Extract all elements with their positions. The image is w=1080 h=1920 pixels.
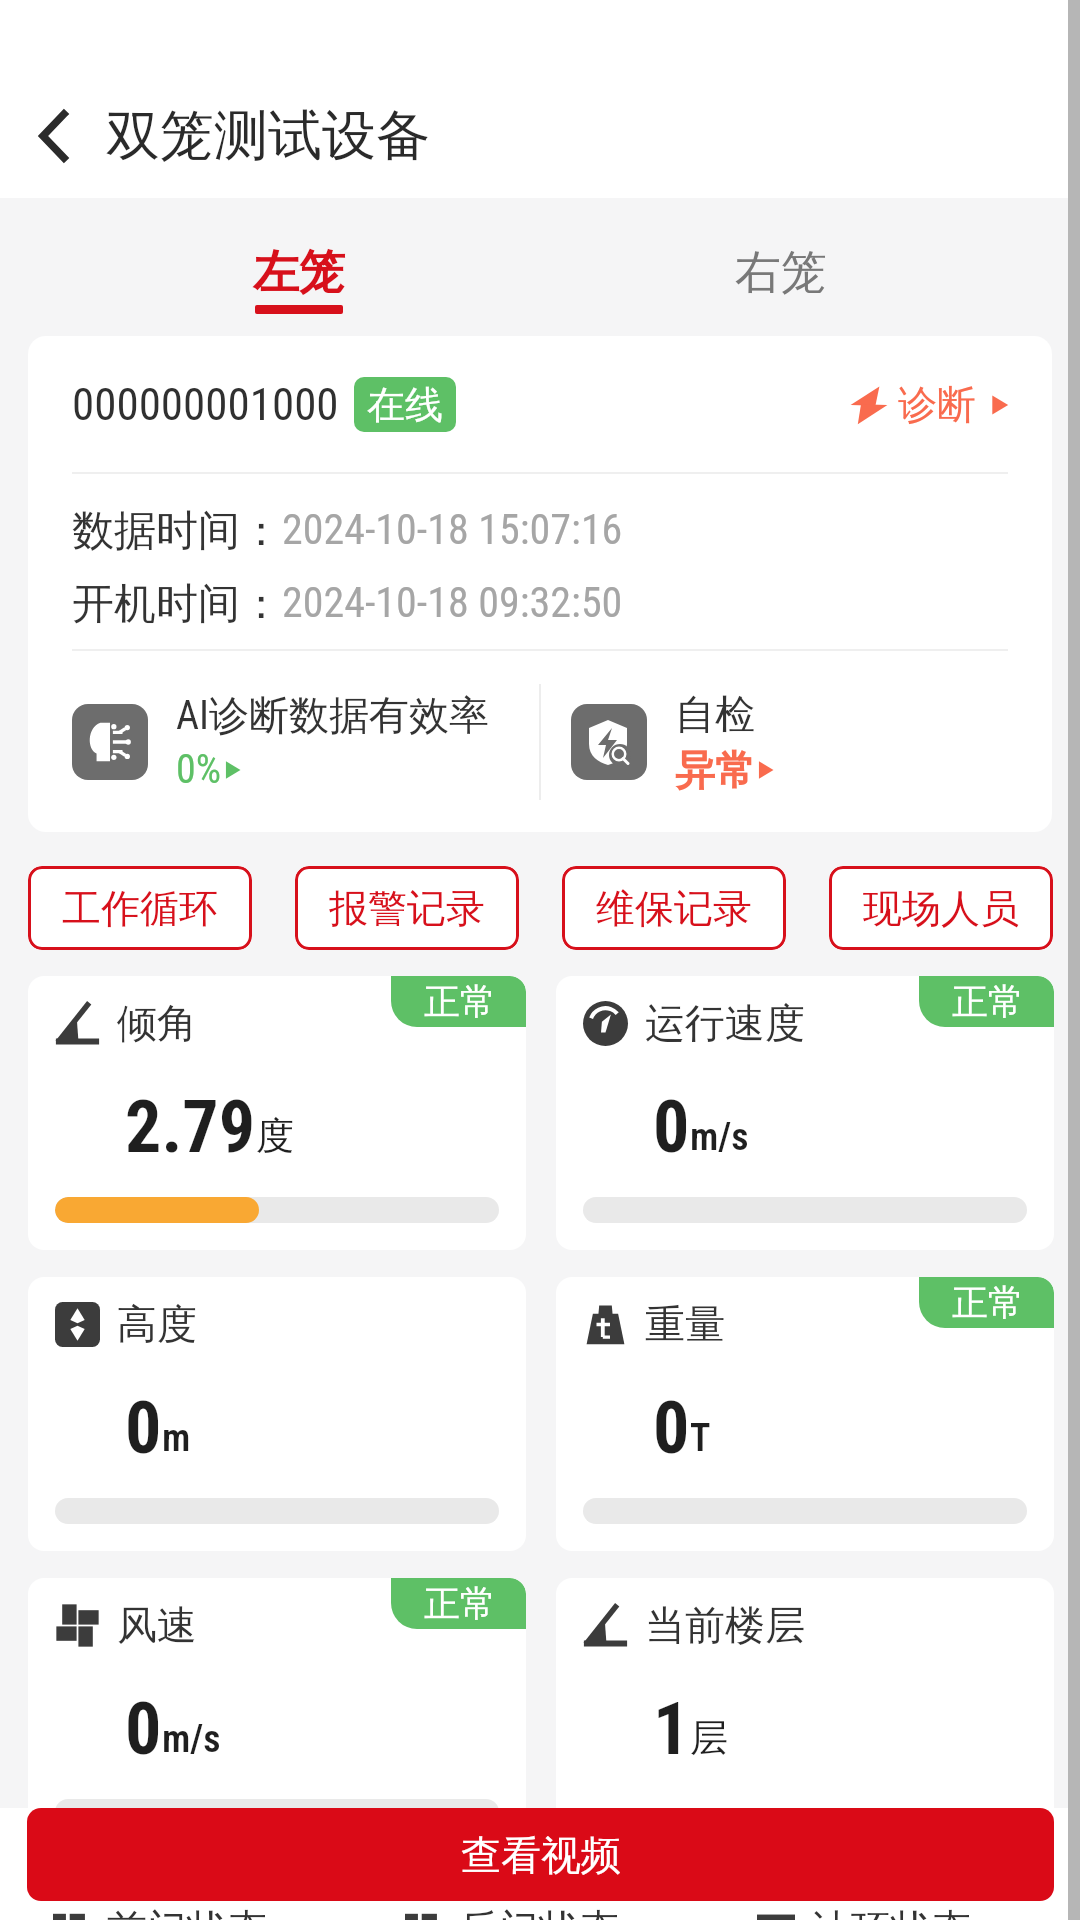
button[interactable]: Back [30,110,82,162]
staticText: 右笼 [735,244,827,302]
staticText: 后门状态 [459,1904,619,1920]
button[interactable]: 右笼 [540,198,1022,336]
button[interactable]: 左笼 [58,198,540,336]
staticText: 维保记录 [596,884,752,933]
button[interactable]: 高度 [28,1277,526,1551]
staticText: 现场人员 [863,884,1019,933]
button[interactable]: 风速 [28,1578,526,1852]
button[interactable]: AI诊断数据有效率 [72,651,539,832]
staticText: m [162,1416,191,1461]
staticText: 高度 [117,1299,197,1349]
staticText: 0 [653,1085,690,1169]
staticText: T [690,1416,711,1461]
staticText: AI诊断数据有效率 [176,690,490,740]
staticText: 诊断 [898,380,976,429]
staticText: 运行速度 [645,998,805,1048]
staticText: m/s [690,1115,749,1160]
staticText: 自检 [675,689,755,739]
button[interactable]: 查看视频 [27,1808,1054,1901]
staticText: 正常 [424,979,496,1024]
staticText: 风速 [117,1600,197,1650]
staticText: 1 [653,1687,690,1771]
staticText: 重量 [645,1299,725,1349]
staticText: 2024-10-18 09:32:50 [282,578,623,627]
button[interactable]: 诊断 [849,380,1012,429]
button[interactable]: 倾角 [28,976,526,1250]
staticText: 双笼测试设备 [106,102,430,170]
staticText: 查看视频 [461,1830,621,1880]
staticText: 当前楼层 [645,1600,805,1650]
staticText: 0 [125,1687,162,1771]
button[interactable]: 维保记录 [562,866,786,950]
staticText: 左笼 [253,244,345,302]
staticText: 正常 [952,979,1024,1024]
staticText: 开机时间： [72,578,282,631]
staticText: m/s [162,1717,221,1762]
staticText: 正常 [952,1280,1024,1325]
button[interactable]: 现场人员 [829,866,1053,950]
button[interactable]: 运行速度 [556,976,1054,1250]
button[interactable]: 报警记录 [295,866,519,950]
staticText: 层 [690,1714,728,1762]
button[interactable]: 后门状态 [405,1904,757,1920]
staticText: 工作循环 [62,884,218,933]
staticText: 报警记录 [329,884,485,933]
staticText: 在线 [367,381,443,429]
button[interactable]: 油顶状态 [757,1904,1080,1920]
staticText: 2024-10-18 15:07:16 [282,505,623,554]
staticText: 2.79 [125,1085,256,1169]
staticText: 油顶状态 [811,1904,971,1920]
button[interactable]: 自检 [571,651,1052,832]
staticText: 000000001000 [72,378,339,431]
staticText: 0% [176,746,222,793]
staticText: 0 [653,1386,690,1470]
staticText: 度 [256,1112,294,1160]
staticText: 数据时间： [72,505,282,558]
button[interactable]: 当前楼层 [556,1578,1054,1852]
button[interactable]: 工作循环 [28,866,252,950]
staticText: 异常 [675,745,755,795]
button[interactable]: 重量 [556,1277,1054,1551]
staticText: 前门状态 [107,1904,267,1920]
button[interactable]: 前门状态 [53,1904,405,1920]
staticText: 正常 [424,1581,496,1626]
staticText: 0 [125,1386,162,1470]
staticText: 倾角 [117,998,197,1048]
